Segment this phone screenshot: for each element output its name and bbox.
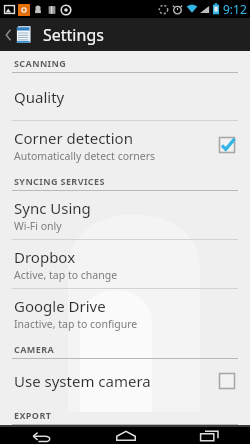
button[interactable]: Corner detection: [0, 121, 250, 169]
staticText: Dropbox: [14, 247, 76, 267]
button[interactable]: Google Drive: [0, 289, 250, 337]
button[interactable]: Navigate up: [0, 25, 36, 44]
button[interactable]: Use system camera: [0, 359, 250, 403]
staticText: Google Drive: [14, 296, 106, 316]
staticText: Settings: [43, 24, 104, 46]
staticText: Use system camera: [14, 371, 151, 391]
staticText: Corner detection: [14, 128, 133, 148]
staticText: EXPORT: [14, 409, 52, 421]
button[interactable]: Back: [0, 427, 84, 444]
button[interactable]: Dropbox: [0, 240, 250, 288]
staticText: Quality: [14, 87, 65, 107]
button[interactable]: Quality: [0, 73, 250, 120]
staticText: SCANNING: [14, 57, 67, 69]
staticText: Active, tap to change: [14, 268, 118, 282]
button[interactable]: Home: [84, 427, 167, 444]
staticText: CAMERA: [14, 343, 55, 355]
staticText: Automatically detect corners: [14, 149, 156, 163]
staticText: SYNCING SERVICES: [14, 175, 105, 187]
button[interactable]: Checked: [218, 136, 236, 154]
staticText: 9:12: [223, 1, 247, 17]
button[interactable]: Unchecked: [218, 372, 236, 390]
staticText: Wi-Fi only: [14, 219, 62, 233]
button[interactable]: Recent apps: [167, 427, 250, 444]
staticText: Sync Using: [14, 198, 91, 218]
staticText: Inactive, tap to configure: [14, 317, 138, 331]
button[interactable]: Sync Using: [0, 191, 250, 239]
